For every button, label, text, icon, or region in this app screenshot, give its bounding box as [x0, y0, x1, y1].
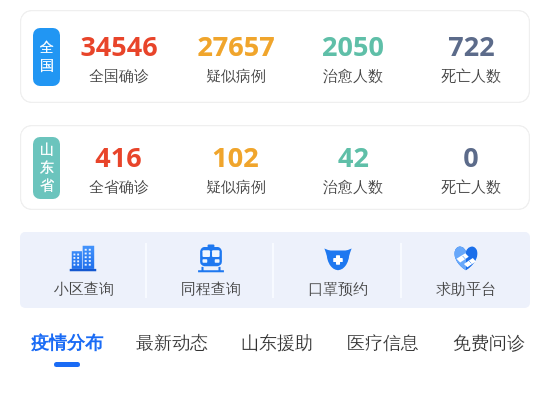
staticText: 722 [448, 27, 495, 64]
staticText: 省 [40, 177, 54, 195]
staticText: 34546 [80, 27, 158, 64]
staticText: 全 [40, 39, 54, 57]
staticText: 东 [40, 159, 54, 177]
staticText: 国 [40, 57, 54, 75]
staticText: 102 [212, 138, 259, 175]
staticText: 求助平台 [436, 280, 496, 299]
staticText: 疫情分布 [31, 332, 103, 355]
button[interactable]: 小区查询 [20, 232, 147, 308]
staticText: 全省确诊 [89, 178, 149, 197]
staticText: 免费问诊 [453, 332, 525, 355]
staticText: 0 [463, 138, 479, 175]
button[interactable]: 全 [20, 10, 530, 103]
staticText: 治愈人数 [323, 178, 383, 197]
button[interactable]: 口罩预约 [274, 232, 402, 308]
button[interactable]: 免费问诊 [436, 322, 542, 378]
staticText: 416 [95, 138, 142, 175]
staticText: 疑似病例 [206, 178, 266, 197]
staticText: 42 [338, 138, 369, 175]
staticText: 死亡人数 [441, 178, 501, 197]
staticText: 医疗信息 [347, 332, 419, 355]
staticText: 最新动态 [136, 332, 208, 355]
button[interactable]: 山 [20, 125, 530, 210]
button[interactable]: 同程查询 [147, 232, 274, 308]
staticText: 全国确诊 [89, 67, 149, 86]
button[interactable]: 山东援助 [224, 322, 330, 378]
staticText: 山 [40, 141, 54, 159]
staticText: 死亡人数 [441, 67, 501, 86]
button[interactable]: 疫情分布 [14, 322, 119, 378]
staticText: 27657 [197, 27, 275, 64]
staticText: 山东援助 [241, 332, 313, 355]
button[interactable]: 求助平台 [402, 232, 530, 308]
button[interactable]: 最新动态 [119, 322, 224, 378]
staticText: 同程查询 [181, 280, 241, 299]
staticText: 2050 [322, 27, 384, 64]
staticText: 小区查询 [54, 280, 114, 299]
staticText: 口罩预约 [308, 280, 368, 299]
button[interactable]: 医疗信息 [330, 322, 436, 378]
staticText: 治愈人数 [323, 67, 383, 86]
staticText: 疑似病例 [206, 67, 266, 86]
